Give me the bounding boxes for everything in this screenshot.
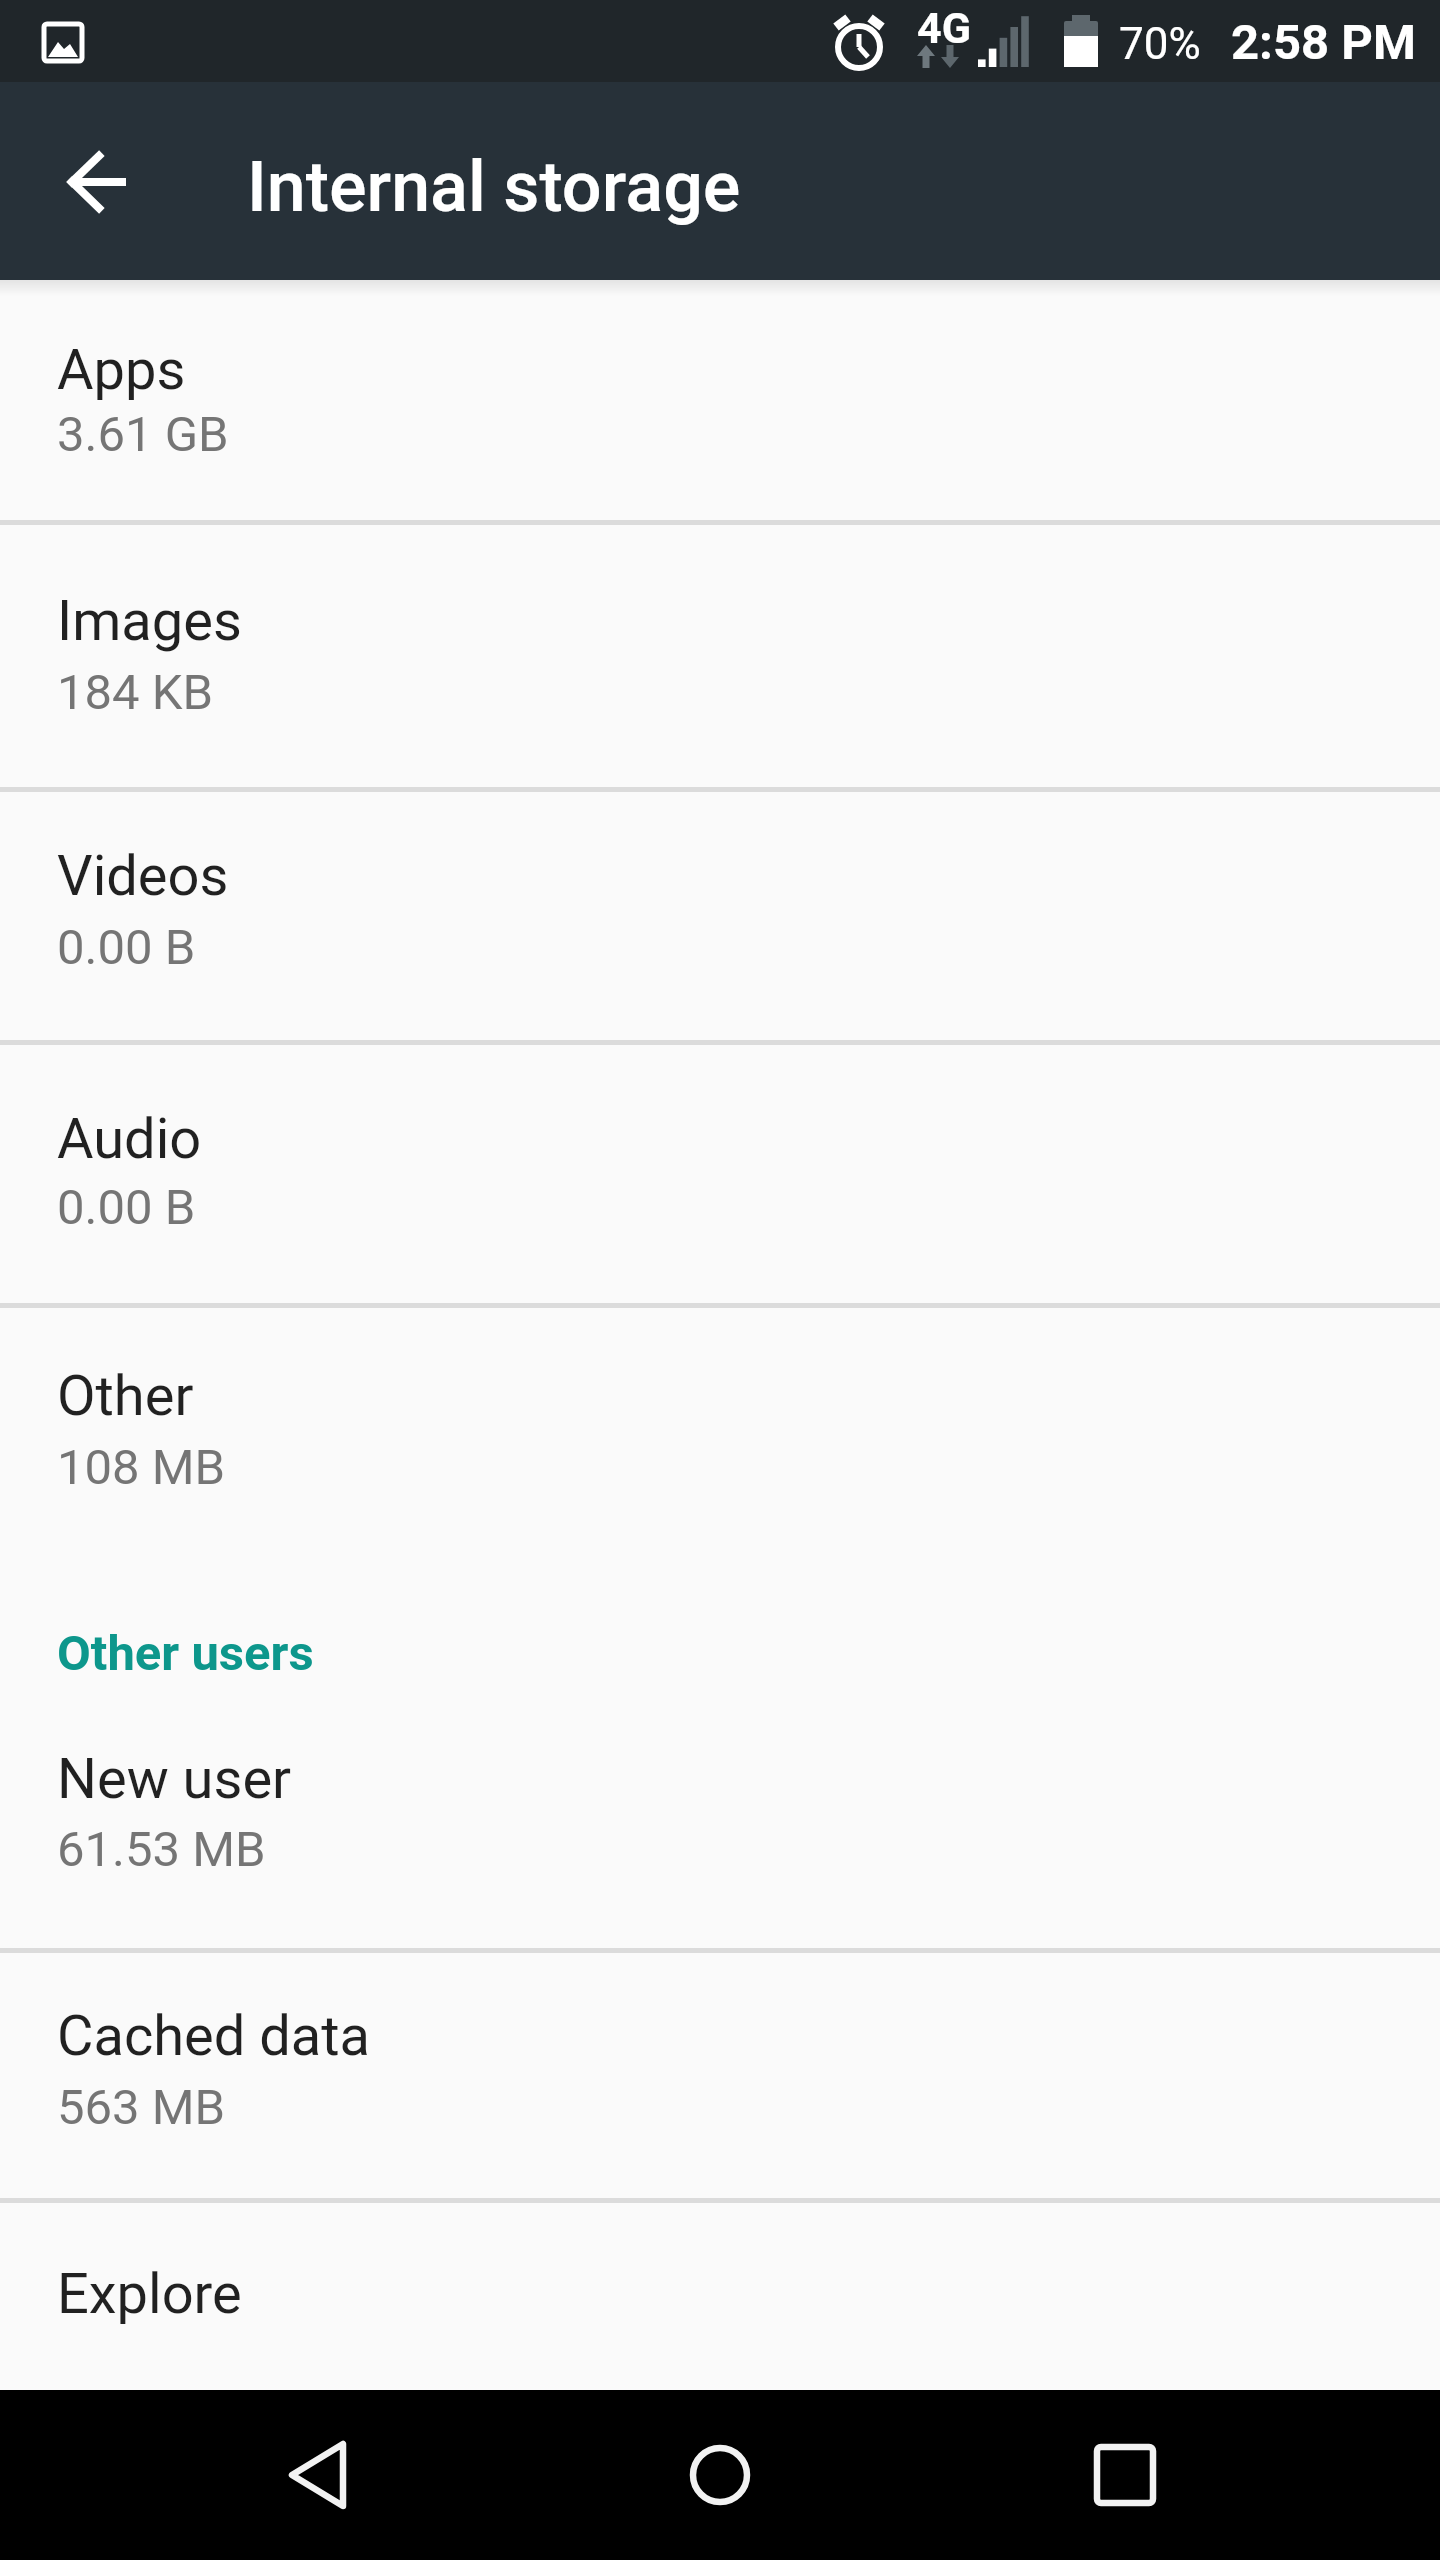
staticText: 4G (917, 3, 971, 53)
button[interactable]: Other (0, 1308, 1440, 1565)
staticText: 70% (1119, 18, 1201, 70)
button[interactable]: Cached data (0, 1953, 1440, 2198)
staticText: Internal storage (247, 146, 741, 228)
staticText: Other users (57, 1625, 314, 1682)
staticText: 3.61 GB (57, 406, 229, 463)
staticText: 0.00 B (57, 919, 196, 976)
staticText: 563 MB (57, 2079, 226, 2136)
staticText: Audio (57, 1106, 202, 1172)
staticText: 184 KB (57, 664, 214, 721)
button[interactable]: Images (0, 525, 1440, 787)
staticText: Images (57, 588, 242, 654)
button[interactable] (650, 2435, 790, 2515)
staticText: 61.53 MB (57, 1821, 266, 1878)
staticText: Cached data (57, 2003, 371, 2069)
staticText: Apps (57, 337, 186, 403)
staticText: 2:58 PM (1231, 14, 1416, 71)
staticText: Other (57, 1363, 194, 1429)
button[interactable]: New user (0, 1700, 1440, 1948)
button[interactable]: Explore (0, 2203, 1440, 2390)
staticText: New user (57, 1746, 292, 1812)
staticText: 108 MB (57, 1439, 226, 1496)
button[interactable]: Audio (0, 1045, 1440, 1303)
button[interactable]: Videos (0, 792, 1440, 1040)
staticText: Explore (57, 2261, 242, 2327)
staticText: 0.00 B (57, 1179, 196, 1236)
button[interactable] (1055, 2435, 1195, 2515)
staticText: Videos (57, 843, 229, 909)
button[interactable] (40, 124, 156, 240)
button[interactable] (250, 2435, 390, 2515)
button[interactable]: Apps (0, 280, 1440, 520)
